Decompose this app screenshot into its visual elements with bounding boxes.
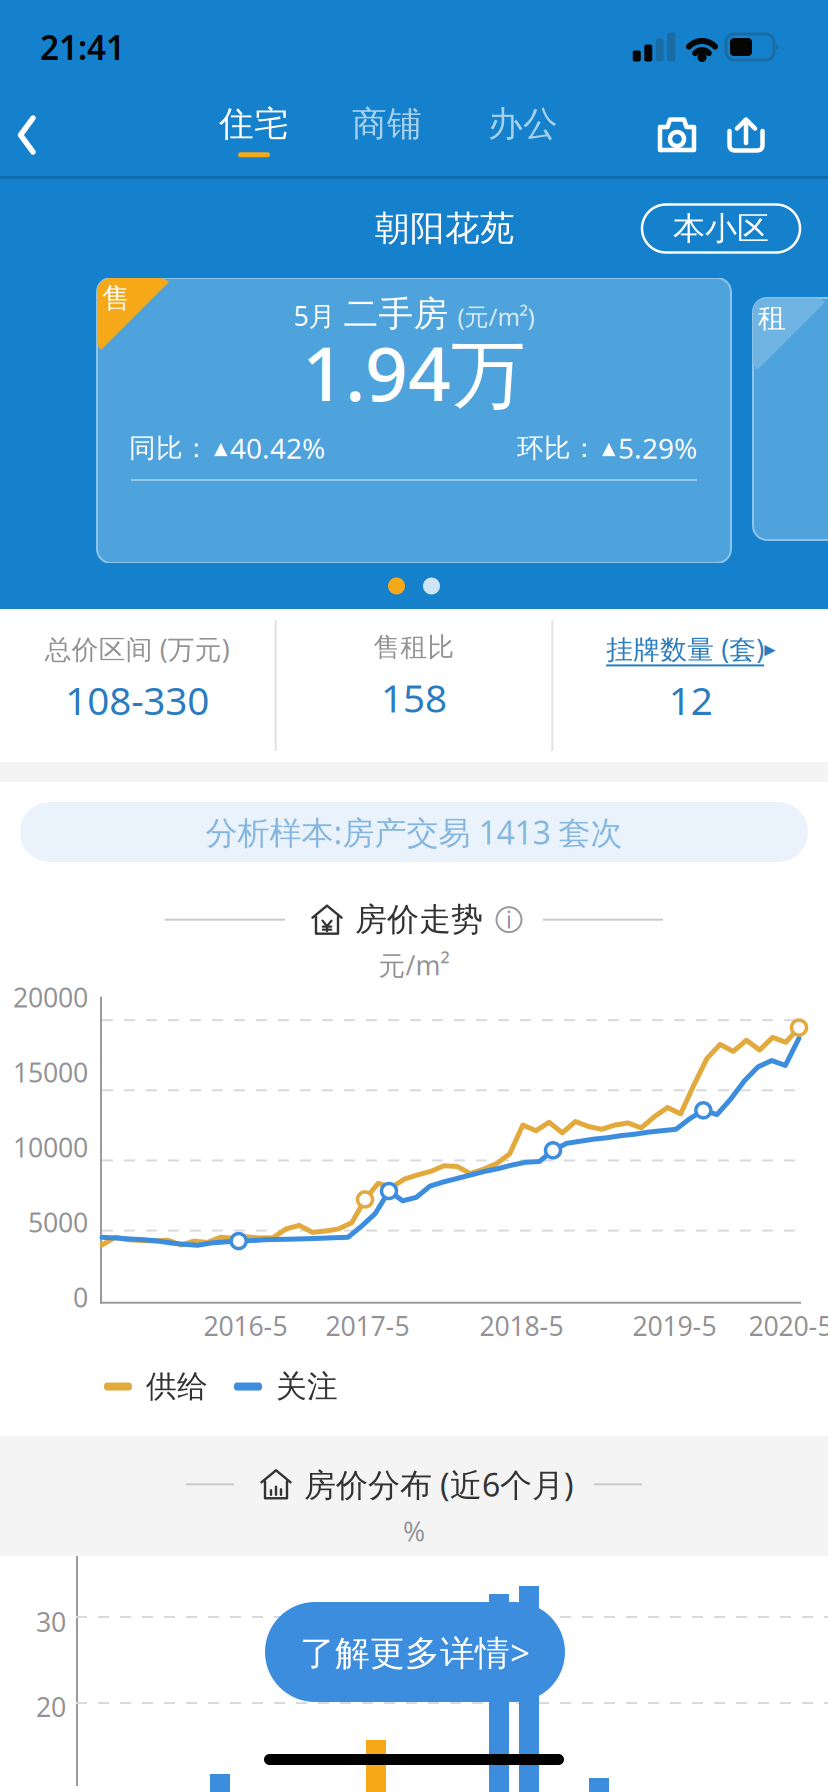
staticText: 住宅 [219,103,289,145]
staticText: 环比： [517,432,598,464]
staticText: 108-330 [65,674,209,726]
staticText: 总价区间 (万元) [45,631,230,666]
staticText: ▸ [764,636,775,661]
staticText: 租 [758,301,786,335]
staticText: 办公 [488,103,558,145]
staticText: 0 [73,1279,88,1315]
staticText: 5月 [293,298,335,333]
button[interactable]: Back [0,94,84,176]
staticText: 供给 [146,1368,208,1405]
staticText: 挂牌数量 (套) [606,631,764,666]
staticText: 商铺 [352,103,422,145]
staticText: 21:41 [40,25,125,69]
staticText: 30 [36,1604,66,1639]
staticText: 20 [36,1689,66,1724]
button[interactable]: 住宅 [217,94,291,176]
staticText: 2018-5 [479,1308,563,1343]
staticText: 5.29% [618,429,697,467]
staticText: 售租比 [373,631,454,664]
button[interactable]: 商铺 [350,94,424,176]
staticText: 本小区 [673,209,769,248]
staticText: 同比： [129,432,210,464]
button[interactable]: 办公 [486,94,560,176]
staticText: 2017-5 [325,1308,409,1343]
staticText: 二手房 [343,293,448,335]
staticText: 2019-5 [632,1308,716,1343]
button[interactable]: Share [715,94,777,176]
staticText: 售 [102,281,130,315]
button[interactable]: 售租比 [277,609,551,762]
staticText: 房价分布 (近6个月) [304,1463,574,1505]
staticText: 40.42% [230,429,325,467]
staticText: ▲ [602,438,615,458]
staticText: 2020-5 [748,1308,828,1343]
staticText: 1.94万 [302,322,526,422]
staticText: 10000 [13,1129,88,1165]
button[interactable]: 总价区间 (万元) [0,609,275,762]
staticText: 朝阳花苑 [375,207,515,250]
staticText: i [506,905,512,935]
staticText: 5000 [28,1204,88,1240]
staticText: 158 [381,672,447,723]
staticText: 房价走势 [355,900,483,939]
staticText: (元/m²) [457,300,534,332]
staticText: ▲ [214,438,227,458]
button[interactable]: 本小区 [642,204,800,252]
staticText: 2016-5 [203,1308,287,1343]
staticText: 了解更多详情> [300,1629,530,1675]
staticText: 12 [669,674,713,726]
staticText: 15000 [13,1054,88,1090]
staticText: 关注 [276,1368,338,1405]
staticText: 20000 [13,979,88,1015]
staticText: 元/m² [378,947,449,983]
staticText: 分析样本:房产交易 1413 套次 [205,811,622,853]
button[interactable]: 挂牌数量 (套) [553,609,828,762]
button[interactable]: 了解更多详情> [265,1602,565,1702]
staticText: % [403,1513,425,1549]
button[interactable]: Camera [646,94,708,176]
